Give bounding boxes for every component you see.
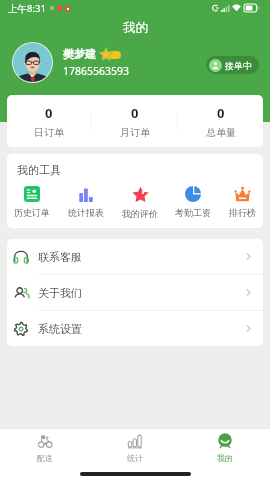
button[interactable]: 排行榜	[229, 186, 256, 218]
staticText: 统计报表	[68, 207, 104, 218]
button[interactable]: 系统设置	[7, 311, 263, 346]
staticText: 樊梦建	[63, 47, 96, 61]
button[interactable]: 配送	[0, 434, 90, 463]
button[interactable]: 关于我们	[7, 275, 263, 310]
button[interactable]: 0	[178, 95, 263, 147]
staticText: 我的	[217, 453, 233, 463]
button[interactable]: 历史订单	[14, 186, 50, 218]
staticText: 考勤工资	[175, 207, 211, 218]
staticText: 接单中	[225, 60, 252, 71]
staticText: 联系客服	[38, 250, 82, 264]
button[interactable]: 联系客服	[7, 239, 263, 274]
button[interactable]: 0	[7, 95, 91, 147]
staticText: 0	[45, 104, 53, 122]
staticText: 总单量	[206, 126, 236, 139]
staticText: 统计	[127, 453, 143, 463]
button[interactable]: 统计报表	[68, 186, 104, 218]
button[interactable]: 我的评价	[122, 186, 158, 219]
staticText: 月订单	[120, 126, 150, 139]
staticText: 0	[217, 104, 225, 122]
staticText: 排行榜	[229, 207, 256, 218]
button[interactable]: 考勤工资	[175, 186, 211, 218]
staticText: 我的	[123, 20, 148, 36]
staticText: 历史订单	[14, 207, 50, 218]
staticText: 我的工具	[17, 163, 61, 177]
staticText: 系统设置	[38, 322, 82, 336]
staticText: 我的评价	[122, 208, 158, 219]
staticText: 日订单	[34, 126, 64, 139]
button[interactable]: 统计	[90, 434, 180, 463]
staticText: 关于我们	[38, 286, 82, 300]
button[interactable]: 接单中	[206, 56, 259, 74]
staticText: 上午8:31	[8, 2, 46, 15]
button[interactable]: 我的	[180, 433, 270, 463]
staticText: 配送	[37, 453, 53, 463]
staticText: 0	[131, 104, 139, 122]
staticText: 17865563593	[63, 64, 130, 78]
button[interactable]: 0	[92, 95, 177, 147]
